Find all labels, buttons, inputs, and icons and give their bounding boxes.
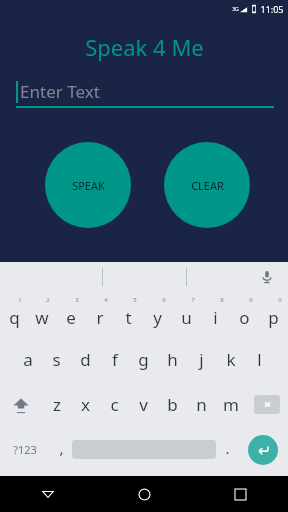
staticText: n bbox=[196, 393, 207, 416]
button[interactable]: ?123 bbox=[0, 427, 50, 472]
button[interactable]: Home bbox=[96, 476, 192, 512]
button[interactable]: 6 bbox=[143, 292, 172, 337]
staticText: . bbox=[225, 438, 230, 458]
staticText: f bbox=[112, 348, 118, 371]
button[interactable]: l bbox=[245, 337, 274, 382]
staticText: v bbox=[139, 393, 148, 416]
button[interactable]: 9 bbox=[230, 292, 259, 337]
staticText: 7 bbox=[191, 296, 195, 304]
staticText: e bbox=[66, 306, 76, 329]
staticText: 1 bbox=[18, 296, 22, 304]
staticText: u bbox=[181, 306, 192, 329]
button[interactable]: 4 bbox=[85, 292, 114, 337]
staticText: 5 bbox=[133, 296, 137, 304]
button[interactable]: Recents bbox=[192, 476, 288, 512]
button[interactable]: 2 bbox=[28, 292, 56, 337]
staticText: k bbox=[226, 348, 236, 371]
staticText: d bbox=[80, 348, 91, 371]
staticText: SPEAK bbox=[72, 178, 105, 193]
button[interactable]: 1 bbox=[0, 292, 28, 337]
button[interactable]: SPEAK bbox=[45, 142, 131, 228]
button[interactable]: d bbox=[71, 337, 100, 382]
button[interactable]: 8 bbox=[201, 292, 230, 337]
staticText: ?123 bbox=[13, 442, 37, 457]
button[interactable]: m bbox=[216, 382, 245, 427]
staticText: Enter Text bbox=[20, 80, 100, 103]
staticText: 8 bbox=[220, 296, 224, 304]
button[interactable]: . bbox=[216, 427, 238, 472]
staticText: 3G bbox=[232, 6, 239, 13]
staticText: 2 bbox=[46, 296, 50, 304]
staticText: j bbox=[199, 348, 204, 371]
button[interactable]: 5 bbox=[114, 292, 143, 337]
button[interactable]: h bbox=[158, 337, 187, 382]
button[interactable]: c bbox=[100, 382, 129, 427]
button[interactable]: Backspace bbox=[245, 382, 288, 427]
staticText: o bbox=[239, 306, 250, 329]
button[interactable]: CLEAR bbox=[164, 142, 250, 228]
staticText: m bbox=[223, 393, 239, 416]
button[interactable]: Back bbox=[0, 476, 96, 512]
staticText: g bbox=[138, 348, 149, 371]
staticText: r bbox=[96, 306, 104, 329]
staticText: , bbox=[59, 438, 64, 458]
staticText: w bbox=[35, 306, 49, 329]
button[interactable]: n bbox=[187, 382, 216, 427]
staticText: CLEAR bbox=[191, 178, 224, 193]
staticText: i bbox=[213, 306, 218, 329]
button[interactable]: 7 bbox=[172, 292, 201, 337]
staticText: 11:05 bbox=[260, 3, 284, 15]
button[interactable]: 0 bbox=[259, 292, 288, 337]
button[interactable]: s bbox=[42, 337, 71, 382]
staticText: q bbox=[9, 306, 20, 329]
staticText: p bbox=[268, 306, 279, 329]
staticText: y bbox=[153, 306, 162, 329]
staticText: x bbox=[81, 393, 90, 416]
button[interactable]: b bbox=[158, 382, 187, 427]
button[interactable]: Voice input bbox=[256, 266, 278, 288]
button[interactable]: 3 bbox=[56, 292, 85, 337]
button[interactable]: j bbox=[187, 337, 216, 382]
staticText: a bbox=[23, 348, 33, 371]
staticText: Speak 4 Me bbox=[85, 32, 204, 62]
button[interactable]: Enter Text bbox=[16, 76, 274, 106]
button[interactable]: f bbox=[100, 337, 129, 382]
button[interactable]: v bbox=[129, 382, 158, 427]
button[interactable]: g bbox=[129, 337, 158, 382]
staticText: t bbox=[125, 306, 132, 329]
staticText: b bbox=[167, 393, 178, 416]
button[interactable]: k bbox=[216, 337, 245, 382]
button[interactable]: x bbox=[71, 382, 100, 427]
staticText: 6 bbox=[162, 296, 166, 304]
button[interactable]: Shift bbox=[0, 382, 42, 427]
staticText: z bbox=[53, 393, 61, 416]
button[interactable]: Enter bbox=[238, 427, 288, 472]
staticText: h bbox=[167, 348, 178, 371]
staticText: c bbox=[110, 393, 119, 416]
staticText: 0 bbox=[278, 296, 282, 304]
staticText: l bbox=[257, 348, 262, 371]
staticText: s bbox=[52, 348, 61, 371]
staticText: 9 bbox=[249, 296, 253, 304]
button[interactable]: a bbox=[13, 337, 42, 382]
button[interactable]: z bbox=[42, 382, 71, 427]
button[interactable]: Space bbox=[72, 427, 216, 472]
staticText: 4 bbox=[104, 296, 108, 304]
button[interactable]: , bbox=[50, 427, 72, 472]
staticText: 3 bbox=[75, 296, 79, 304]
